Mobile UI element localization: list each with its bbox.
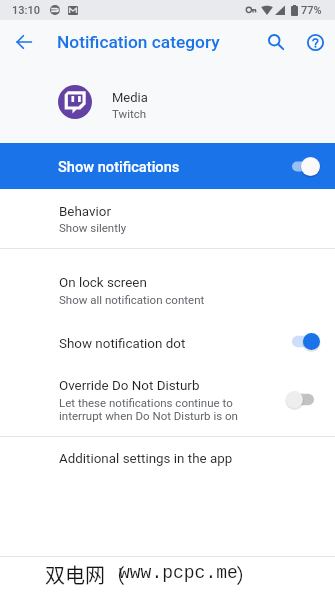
button[interactable]: Search <box>258 24 294 60</box>
staticText: Additional settings in the app <box>59 451 233 467</box>
staticText: Media <box>112 90 148 105</box>
staticText: Let these notifications continue to <box>59 396 233 409</box>
staticText: Show all notification content <box>59 293 205 306</box>
button[interactable] <box>0 249 335 312</box>
button[interactable]: Help <box>297 24 333 60</box>
staticText: Notification category <box>57 32 220 52</box>
staticText: On lock screen <box>59 275 147 291</box>
staticText: 双电网（ <box>45 560 125 589</box>
button[interactable]: Navigate up <box>6 24 42 60</box>
staticText: 77% <box>301 4 322 17</box>
staticText: Show notification dot <box>59 336 186 352</box>
staticText: Twitch <box>112 107 147 120</box>
staticText: www.pcpc.me <box>119 563 238 583</box>
button[interactable] <box>0 78 335 126</box>
staticText: Show notifications <box>58 158 180 175</box>
staticText: Behavior <box>59 204 111 220</box>
staticText: 13:10 <box>12 4 40 17</box>
staticText: Show silently <box>59 221 127 234</box>
button[interactable] <box>0 437 335 477</box>
button[interactable] <box>0 359 335 436</box>
staticText: ） <box>236 560 256 589</box>
button[interactable] <box>0 312 335 359</box>
button[interactable] <box>0 189 335 248</box>
staticText: interrupt when Do Not Disturb is on <box>59 409 238 422</box>
staticText: Override Do Not Disturb <box>59 378 200 394</box>
button[interactable] <box>0 143 335 189</box>
